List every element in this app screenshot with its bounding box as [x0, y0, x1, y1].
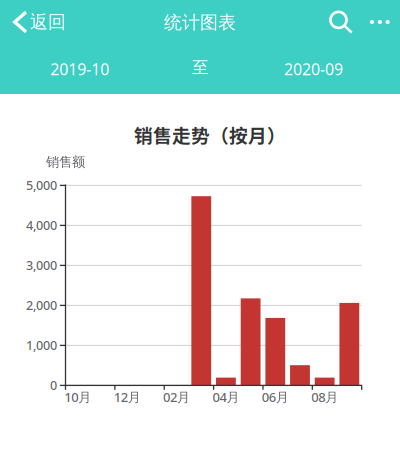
staticText: 至	[192, 57, 209, 78]
staticText: 3,000	[26, 256, 57, 274]
staticText: 2,000	[26, 296, 57, 314]
staticText: 销售走势（按月）	[134, 121, 286, 148]
staticText: 0	[50, 376, 57, 394]
button[interactable]: 2019-10	[25, 49, 135, 89]
staticText: 2020-09	[284, 58, 343, 80]
button[interactable]: 返回	[0, 0, 80, 44]
staticText: 10月	[64, 388, 91, 406]
button[interactable]: 2020-09	[258, 49, 368, 89]
staticText: 4,000	[26, 216, 57, 234]
button[interactable]: Search	[321, 0, 361, 43]
staticText: 1,000	[26, 336, 57, 354]
staticText: 12月	[114, 388, 141, 406]
staticText: 04月	[212, 388, 239, 406]
staticText: 08月	[311, 388, 338, 406]
staticText: 06月	[262, 388, 289, 406]
staticText: 销售额	[46, 154, 85, 170]
button[interactable]: More options	[361, 0, 399, 44]
staticText: 统计图表	[164, 11, 236, 34]
staticText: 02月	[163, 388, 190, 406]
staticText: 2019-10	[50, 58, 109, 80]
staticText: 返回	[30, 11, 66, 33]
staticText: 5,000	[26, 176, 57, 194]
